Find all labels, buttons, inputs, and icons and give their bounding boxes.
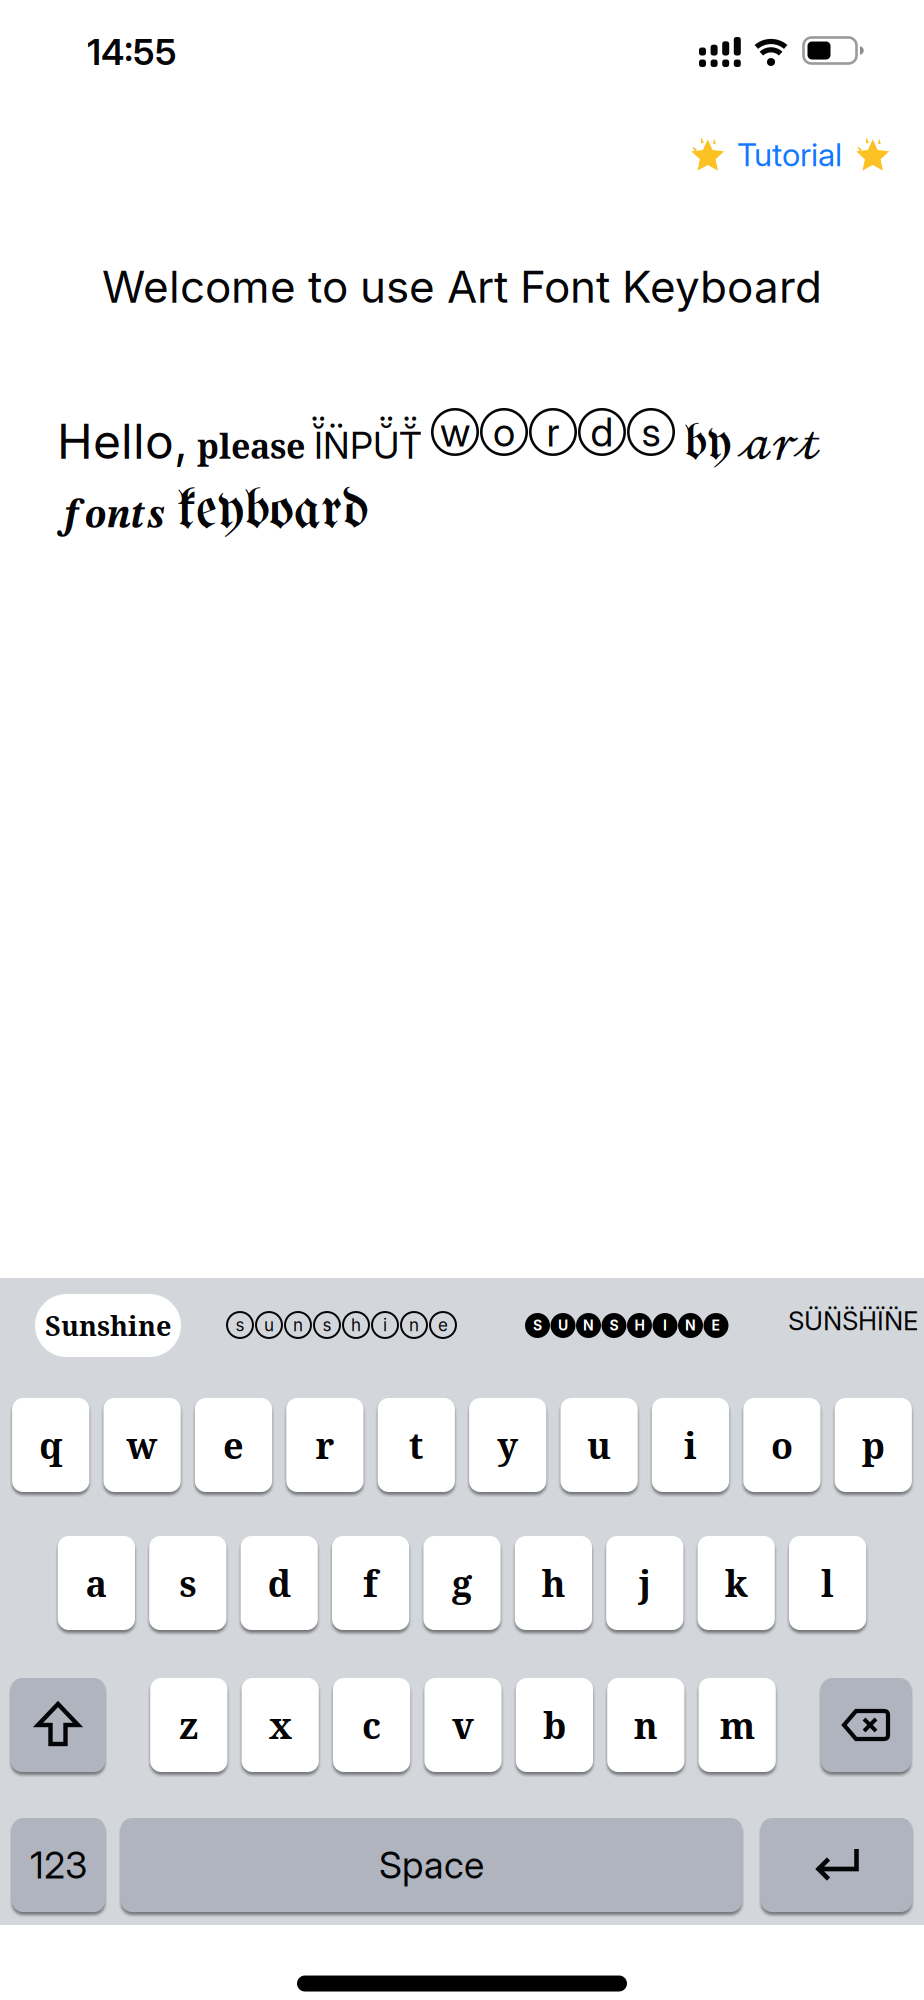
- staticText: y: [497, 1420, 518, 1469]
- staticText: s: [179, 1558, 196, 1607]
- staticText: m: [720, 1700, 755, 1749]
- staticText: N: [583, 1317, 594, 1334]
- button[interactable]: j: [606, 1536, 683, 1630]
- staticText: keyboard: [177, 482, 368, 542]
- staticText: b: [543, 1700, 566, 1749]
- button[interactable]: k: [698, 1536, 775, 1630]
- button[interactable]: sunshine circled: [226, 1311, 457, 1339]
- staticText: s: [322, 1315, 331, 1335]
- button[interactable]: v: [424, 1678, 502, 1772]
- staticText: i: [383, 1315, 387, 1335]
- button[interactable]: w: [103, 1398, 181, 1492]
- staticText: I: [663, 1317, 667, 1334]
- button[interactable]: sunshine filled: [525, 1313, 728, 1338]
- staticText: Hello,: [57, 412, 188, 470]
- button[interactable]: b: [516, 1678, 593, 1772]
- staticText: 𝒇𝒐𝒏𝒕𝒔: [57, 497, 165, 537]
- staticText: p: [862, 1420, 885, 1469]
- staticText: H: [634, 1317, 644, 1334]
- button[interactable]: l: [789, 1536, 866, 1630]
- staticText: s: [641, 408, 660, 456]
- staticText: x: [269, 1700, 292, 1749]
- button[interactable]: e: [195, 1398, 272, 1492]
- staticText: please: [197, 422, 305, 469]
- staticText: a: [85, 1558, 107, 1607]
- button[interactable]: Numbers: [12, 1818, 105, 1912]
- button[interactable]: s: [149, 1536, 226, 1630]
- button[interactable]: Sunshine: [35, 1294, 181, 1357]
- staticText: 14:55: [87, 30, 177, 74]
- staticText: g: [452, 1558, 472, 1607]
- button[interactable]: a: [58, 1536, 135, 1630]
- button[interactable]: t: [378, 1398, 455, 1492]
- staticText: z: [179, 1700, 198, 1749]
- staticText: n: [293, 1315, 303, 1335]
- button[interactable]: g: [423, 1536, 501, 1630]
- staticText: 123: [30, 1843, 87, 1887]
- staticText: l: [821, 1558, 834, 1607]
- staticText: S: [609, 1317, 618, 1334]
- staticText: k: [725, 1558, 748, 1607]
- button[interactable]: Space: [121, 1818, 742, 1912]
- button[interactable]: h: [515, 1536, 592, 1630]
- button[interactable]: f: [332, 1536, 409, 1630]
- button[interactable]: r: [286, 1398, 363, 1492]
- button[interactable]: u: [560, 1398, 638, 1492]
- staticText: n: [409, 1315, 419, 1335]
- staticText: w: [440, 408, 470, 456]
- button[interactable]: n: [607, 1678, 684, 1772]
- staticText: e: [223, 1420, 244, 1469]
- staticText: j: [639, 1558, 651, 1607]
- staticText: by: [684, 418, 731, 472]
- button[interactable]: m: [699, 1678, 776, 1772]
- staticText: E: [711, 1317, 720, 1334]
- staticText: w: [127, 1420, 158, 1469]
- staticText: Welcome to use Art Font Keyboard: [102, 260, 822, 313]
- staticText: e: [438, 1315, 448, 1335]
- button[interactable]: i: [652, 1398, 729, 1492]
- staticText: Sunshine: [45, 1307, 171, 1344]
- staticText: c: [362, 1700, 381, 1749]
- staticText: SÜN̈S̈ḦÏN̈E: [788, 1305, 918, 1336]
- staticText: u: [587, 1420, 611, 1469]
- staticText: n: [634, 1700, 658, 1749]
- staticText: Tutorial: [737, 135, 842, 174]
- button[interactable]: z: [150, 1678, 227, 1772]
- staticText: Space: [379, 1843, 484, 1887]
- staticText: o: [771, 1420, 793, 1469]
- button[interactable]: c: [333, 1678, 410, 1772]
- staticText: f: [363, 1558, 378, 1607]
- staticText: d: [268, 1558, 291, 1607]
- staticText: h: [351, 1315, 361, 1335]
- staticText: r: [546, 408, 559, 456]
- staticText: U: [558, 1317, 568, 1334]
- button[interactable]: sunshine umlaut: [788, 1305, 918, 1336]
- staticText: N: [685, 1317, 696, 1334]
- button[interactable]: Tutorial: [689, 135, 890, 174]
- button[interactable]: Shift: [11, 1678, 105, 1772]
- button[interactable]: x: [242, 1678, 319, 1772]
- button[interactable]: y: [469, 1398, 546, 1492]
- staticText: Ĭ̈N̈PŬ̈T̆̈: [314, 423, 422, 468]
- staticText: t: [409, 1420, 424, 1469]
- staticText: v: [452, 1700, 474, 1749]
- staticText: r: [315, 1420, 334, 1469]
- button[interactable]: q: [12, 1398, 89, 1492]
- button[interactable]: d: [241, 1536, 318, 1630]
- staticText: d: [590, 408, 613, 456]
- button[interactable]: Delete: [821, 1678, 911, 1772]
- staticText: S: [533, 1317, 542, 1334]
- staticText: u: [264, 1315, 274, 1335]
- staticText: s: [235, 1315, 244, 1335]
- button[interactable]: Return: [761, 1818, 912, 1912]
- staticText: o: [493, 408, 515, 456]
- staticText: q: [39, 1420, 62, 1469]
- button[interactable]: o: [743, 1398, 820, 1492]
- staticText: h: [541, 1558, 565, 1607]
- button[interactable]: p: [835, 1398, 912, 1492]
- staticText: i: [684, 1420, 697, 1469]
- staticText: 𝒶𝓇𝓉: [740, 422, 821, 470]
